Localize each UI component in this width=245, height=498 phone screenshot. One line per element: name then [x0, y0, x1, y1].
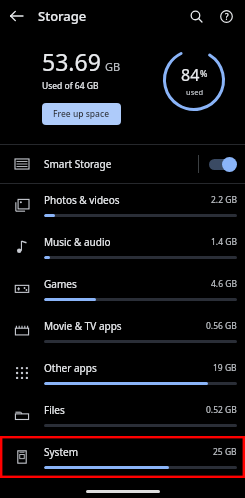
button[interactable]: Free up space: [42, 103, 121, 125]
button[interactable]: Other apps: [0, 352, 245, 394]
staticText: Games: [44, 277, 211, 291]
button[interactable]: System: [0, 436, 245, 478]
staticText: Photos & videos: [44, 193, 211, 207]
staticText: 2.2 GB: [211, 194, 237, 206]
staticText: System: [44, 445, 213, 459]
staticText: 4.6 GB: [211, 278, 237, 290]
staticText: 53.69: [42, 46, 101, 77]
staticText: GB: [105, 59, 121, 74]
staticText: %: [200, 67, 208, 79]
button[interactable]: Help: [211, 1, 241, 31]
staticText: Used of 64 GB: [42, 80, 99, 92]
staticText: 1.4 GB: [211, 236, 237, 248]
button[interactable]: Music & audio: [0, 226, 245, 268]
staticText: ?: [225, 11, 229, 22]
button[interactable]: Photos & videos: [0, 184, 245, 226]
staticText: 19 GB: [213, 362, 237, 374]
staticText: Storage: [38, 7, 181, 25]
staticText: Music & audio: [44, 235, 211, 249]
staticText: 0.56 GB: [206, 320, 237, 332]
staticText: 25 GB: [213, 446, 237, 458]
button[interactable]: Movie & TV apps: [0, 310, 245, 352]
button[interactable]: Smart Storage toggle: [199, 145, 245, 183]
staticText: Other apps: [44, 361, 213, 375]
staticText: 0.52 GB: [206, 404, 237, 416]
staticText: used: [186, 87, 204, 97]
staticText: Files: [44, 403, 206, 417]
staticText: 84: [181, 64, 200, 86]
staticText: Free up space: [53, 108, 110, 120]
button[interactable]: Back: [0, 0, 32, 32]
staticText: Movie & TV apps: [44, 319, 206, 333]
button[interactable]: Games: [0, 268, 245, 310]
staticText: Smart Storage: [44, 157, 198, 171]
button[interactable]: Search: [181, 1, 211, 31]
button[interactable]: Smart Storage: [0, 145, 245, 183]
button[interactable]: Files: [0, 394, 245, 436]
